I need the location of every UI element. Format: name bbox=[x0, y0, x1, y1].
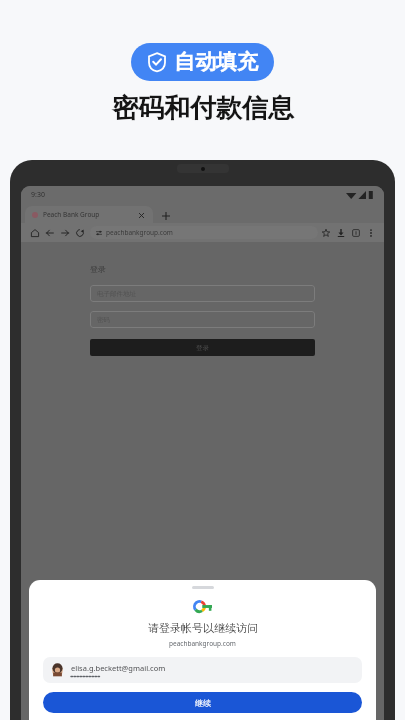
button[interactable]: elisa.g.beckett@gmail.com bbox=[43, 657, 362, 683]
staticText: 自动填充 bbox=[174, 49, 258, 75]
button[interactable]: Downloads bbox=[333, 225, 348, 240]
staticText: 9:30 bbox=[31, 190, 45, 200]
button[interactable]: Bookmark bbox=[318, 225, 333, 240]
button[interactable]: 继续 bbox=[43, 692, 362, 713]
button[interactable]: 密码 bbox=[90, 311, 315, 328]
staticText: 请登录帐号以继续访问 bbox=[148, 621, 258, 635]
button[interactable]: Back bbox=[42, 225, 57, 240]
button[interactable]: Close tab bbox=[136, 210, 146, 220]
staticText: peachbankgroup.com bbox=[169, 639, 236, 648]
staticText: peachbankgroup.com bbox=[106, 228, 173, 237]
button[interactable]: Peach Bank Group bbox=[25, 206, 153, 223]
staticText: Peach Bank Group bbox=[43, 210, 100, 219]
button[interactable]: More options bbox=[363, 225, 378, 240]
button[interactable]: Tabs bbox=[348, 225, 363, 240]
button[interactable]: New tab bbox=[159, 209, 173, 223]
button[interactable]: peachbankgroup.com bbox=[90, 226, 318, 239]
button[interactable]: Forward bbox=[57, 225, 72, 240]
staticText: elisa.g.beckett@gmail.com bbox=[71, 663, 166, 673]
staticText: 继续 bbox=[195, 698, 211, 708]
staticText: 登录 bbox=[90, 264, 106, 274]
button[interactable]: Home bbox=[27, 225, 42, 240]
staticText: 密码 bbox=[97, 316, 110, 324]
staticText: 密码和付款信息 bbox=[112, 92, 294, 125]
staticText: 电子邮件地址 bbox=[97, 290, 136, 298]
button[interactable]: Reload bbox=[72, 225, 87, 240]
button[interactable]: 电子邮件地址 bbox=[90, 285, 315, 302]
button[interactable]: 自动填充 bbox=[131, 43, 274, 81]
staticText: 登录 bbox=[196, 344, 209, 352]
